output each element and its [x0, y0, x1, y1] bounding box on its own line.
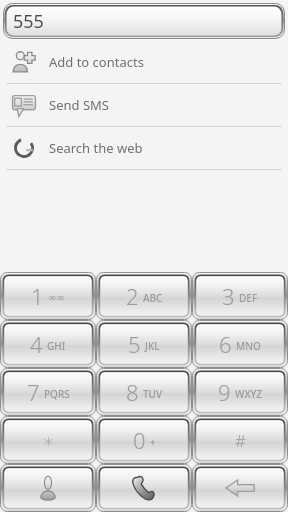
staticText: ABC: [143, 291, 163, 305]
staticText: MNO: [236, 339, 261, 353]
button[interactable]: 5: [96, 320, 192, 368]
button[interactable]: Call: [96, 464, 192, 512]
staticText: 1: [31, 281, 44, 311]
button[interactable]: 4: [0, 320, 96, 368]
staticText: 6: [219, 329, 232, 359]
staticText: 0: [133, 425, 146, 455]
staticText: Add to contacts: [49, 53, 144, 71]
staticText: 5: [128, 329, 141, 359]
staticText: ∞∞: [48, 292, 65, 304]
button[interactable]: 7: [0, 368, 96, 416]
staticText: GHI: [47, 339, 66, 353]
button[interactable]: Backspace: [192, 464, 288, 512]
button[interactable]: 0: [96, 416, 192, 464]
staticText: 4: [30, 329, 43, 359]
staticText: JKL: [145, 339, 160, 353]
staticText: WXYZ: [235, 387, 263, 401]
button[interactable]: 555: [3, 3, 285, 39]
button[interactable]: 1: [0, 272, 96, 320]
button[interactable]: 8: [96, 368, 192, 416]
button[interactable]: 2: [96, 272, 192, 320]
staticText: 7: [27, 377, 40, 407]
staticText: Search the web: [49, 139, 143, 157]
button[interactable]: Add to contacts: [0, 41, 288, 83]
button[interactable]: #: [192, 416, 288, 464]
staticText: TUV: [143, 387, 163, 401]
button[interactable]: Send SMS: [0, 84, 288, 126]
button[interactable]: 6: [192, 320, 288, 368]
button[interactable]: ∗: [0, 416, 96, 464]
staticText: 2: [126, 281, 139, 311]
staticText: +: [150, 435, 156, 449]
staticText: PQRS: [44, 387, 70, 401]
staticText: #: [235, 429, 246, 452]
staticText: DEF: [239, 291, 258, 305]
button[interactable]: 9: [192, 368, 288, 416]
button[interactable]: Search the web: [0, 127, 288, 169]
button[interactable]: 3: [192, 272, 288, 320]
staticText: Send SMS: [49, 96, 109, 114]
staticText: ∗: [42, 429, 55, 452]
button[interactable]: Contacts: [0, 464, 96, 512]
staticText: 9: [218, 377, 231, 407]
staticText: 555: [13, 9, 44, 34]
staticText: 3: [222, 281, 235, 311]
staticText: 8: [126, 377, 139, 407]
